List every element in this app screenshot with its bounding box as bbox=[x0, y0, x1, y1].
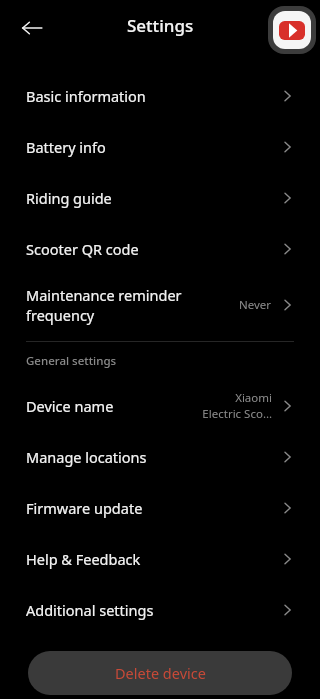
button[interactable]: Manage locations bbox=[0, 431, 320, 482]
button[interactable]: Riding guide bbox=[0, 172, 320, 223]
button[interactable]: Additional settings bbox=[0, 584, 320, 635]
staticText: Never bbox=[239, 297, 272, 313]
staticText: frequency bbox=[26, 305, 95, 325]
button[interactable]: Back bbox=[12, 8, 52, 48]
button[interactable]: Delete device bbox=[28, 651, 292, 695]
staticText: Device name bbox=[26, 396, 202, 416]
button[interactable]: Device name bbox=[0, 380, 320, 431]
staticText: Settings bbox=[127, 14, 194, 37]
staticText: Battery info bbox=[26, 137, 280, 157]
staticText: Maintenance reminder bbox=[26, 285, 182, 305]
staticText: Riding guide bbox=[26, 188, 280, 208]
staticText: Electric Sco… bbox=[202, 406, 272, 422]
staticText: Firmware update bbox=[26, 498, 280, 518]
button[interactable]: YouTube floating shortcut bbox=[268, 6, 316, 54]
staticText: Help & Feedback bbox=[26, 549, 280, 569]
button[interactable]: Help & Feedback bbox=[0, 533, 320, 584]
button[interactable]: Firmware update bbox=[0, 482, 320, 533]
button[interactable]: Basic information bbox=[0, 70, 320, 121]
staticText: Manage locations bbox=[26, 447, 280, 467]
button[interactable]: Scooter QR code bbox=[0, 223, 320, 274]
staticText: Additional settings bbox=[26, 600, 280, 620]
staticText: Delete device bbox=[115, 663, 206, 683]
staticText: Scooter QR code bbox=[26, 239, 280, 259]
staticText: Basic information bbox=[26, 86, 280, 106]
button[interactable]: Battery info bbox=[0, 121, 320, 172]
staticText: General settings bbox=[26, 353, 117, 369]
staticText: Xiaomi bbox=[235, 390, 272, 406]
button[interactable]: Maintenance reminder bbox=[0, 274, 320, 336]
